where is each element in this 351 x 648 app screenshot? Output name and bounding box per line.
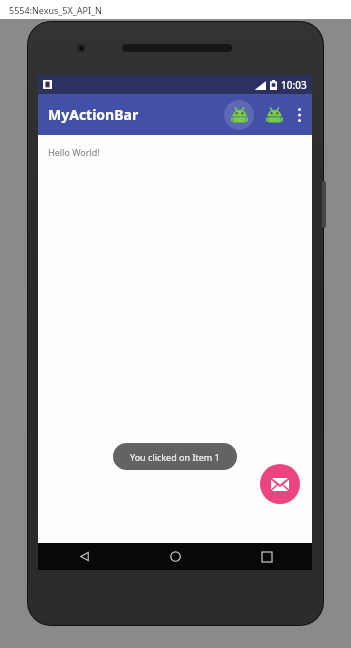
button[interactable]: Back — [38, 543, 130, 570]
button[interactable]: Home — [130, 543, 221, 570]
staticText: You clicked on Item 1 — [130, 451, 220, 463]
button[interactable]: Android action two — [259, 100, 289, 130]
staticText: 5554:Nexus_5X_API_N — [9, 4, 102, 16]
button[interactable]: Recent apps — [221, 543, 312, 570]
button[interactable]: Compose email — [260, 464, 300, 504]
button[interactable]: More options — [289, 97, 309, 133]
button[interactable]: Android action one — [224, 100, 254, 130]
staticText: 10:03 — [281, 78, 307, 92]
staticText: MyActionBar — [48, 105, 139, 124]
staticText: Hello World! — [48, 146, 100, 158]
